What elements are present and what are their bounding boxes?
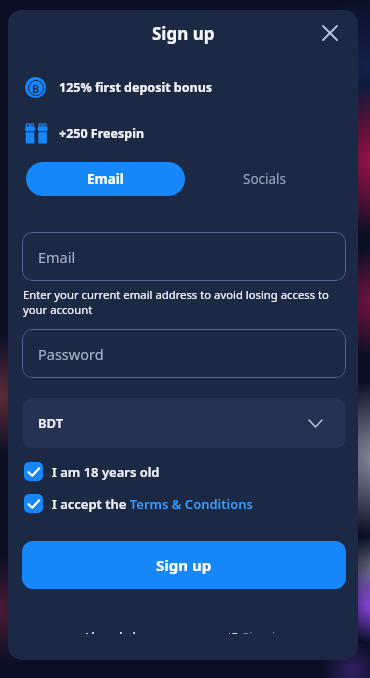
button[interactable]: I am 18 years old (24, 462, 160, 481)
staticText: Email (87, 170, 124, 188)
staticText: I am 18 years old (52, 463, 160, 481)
staticText: Already have an account? (83, 628, 242, 634)
staticText: Password (38, 344, 104, 364)
staticText: +250 Freespin (59, 125, 145, 142)
button[interactable]: Email (22, 232, 346, 281)
staticText: Sign up (152, 22, 215, 44)
button[interactable]: Email (26, 162, 185, 196)
staticText: Enter your current email address to avoi… (23, 287, 329, 302)
staticText: Socials (243, 170, 287, 188)
button[interactable]: Password (22, 329, 346, 378)
button[interactable]: Socials (185, 162, 344, 196)
staticText: B (32, 81, 40, 96)
staticText: Email (38, 247, 76, 267)
button[interactable]: BDT (22, 398, 346, 448)
staticText: Sign in (242, 628, 284, 634)
staticText: Sign up (156, 555, 212, 575)
button[interactable]: I accept the Terms & Conditions (24, 494, 253, 513)
staticText: I accept the Terms & Conditions (52, 495, 253, 513)
button[interactable]: Sign up (22, 541, 346, 589)
button[interactable] (316, 19, 344, 47)
staticText: 125% first deposit bonus (59, 79, 213, 96)
staticText: BDT (38, 414, 64, 432)
staticText: your account (23, 302, 93, 317)
